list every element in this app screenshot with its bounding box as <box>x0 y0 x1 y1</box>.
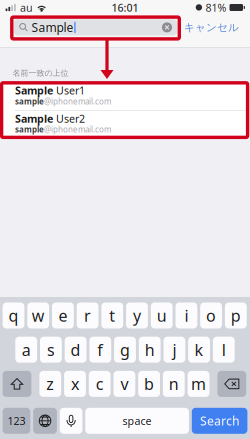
staticText: 名前一致の上位 <box>12 68 68 78</box>
button[interactable]: j <box>163 337 185 363</box>
staticText: z <box>46 373 54 394</box>
staticText: y <box>133 305 141 326</box>
staticText: User2 <box>53 111 85 126</box>
button[interactable]: q <box>3 302 24 328</box>
button[interactable]: e <box>52 302 74 328</box>
staticText: キャンセル <box>184 21 239 34</box>
button[interactable]: Search <box>192 408 247 434</box>
button[interactable]: 123 <box>3 408 30 434</box>
staticText: p <box>231 305 241 326</box>
staticText: User1 <box>53 83 85 97</box>
staticText: Search <box>200 413 239 429</box>
button[interactable]: f <box>89 337 111 363</box>
button[interactable]: s <box>40 337 62 363</box>
staticText: s <box>47 339 55 360</box>
staticText: sample <box>15 96 44 107</box>
button[interactable]: r <box>77 302 98 328</box>
button[interactable]: Sample <box>14 19 177 35</box>
staticText: k <box>195 339 204 360</box>
button[interactable]: c <box>89 371 111 397</box>
staticText: Sample <box>31 19 73 35</box>
button[interactable]: space <box>85 408 189 434</box>
button[interactable]: Sample <box>0 83 250 110</box>
staticText: t <box>109 305 115 326</box>
staticText: u <box>157 305 167 326</box>
staticText: a <box>22 339 31 360</box>
button[interactable]: o <box>200 302 222 328</box>
button[interactable]: p <box>225 302 247 328</box>
staticText: n <box>169 373 179 394</box>
button[interactable]: Sample <box>0 111 250 138</box>
button[interactable]: Shift <box>3 371 31 397</box>
staticText: Sample <box>15 83 53 97</box>
staticText: h <box>145 339 155 360</box>
button[interactable]: i <box>175 302 197 328</box>
button[interactable]: g <box>114 337 136 363</box>
staticText: w <box>32 305 45 326</box>
staticText: d <box>71 339 81 360</box>
staticText: m <box>191 373 206 394</box>
staticText: g <box>120 339 130 360</box>
button[interactable]: Next keyboard <box>33 408 57 434</box>
staticText: au <box>20 0 33 15</box>
staticText: l <box>222 339 226 360</box>
staticText: @iphonemail.com <box>44 96 111 107</box>
staticText: v <box>120 373 128 394</box>
staticText: x <box>71 373 79 394</box>
button[interactable]: l <box>213 337 235 363</box>
button[interactable]: k <box>188 337 210 363</box>
staticText: @iphonemail.com <box>44 124 111 135</box>
button[interactable]: h <box>139 337 161 363</box>
button[interactable]: Dictation <box>60 408 82 434</box>
staticText: c <box>96 373 104 394</box>
staticText: Sample <box>15 111 53 126</box>
button[interactable]: z <box>39 371 61 397</box>
staticText: i <box>184 305 188 326</box>
staticText: f <box>97 339 103 360</box>
staticText: b <box>144 373 154 394</box>
staticText: 16:01 <box>111 0 138 15</box>
button[interactable]: x <box>64 371 86 397</box>
staticText: space <box>123 414 152 428</box>
staticText: sample <box>15 124 44 135</box>
button[interactable]: v <box>113 371 135 397</box>
staticText: j <box>172 339 176 360</box>
staticText: q <box>8 305 18 326</box>
button[interactable]: w <box>27 302 49 328</box>
button[interactable]: n <box>163 371 185 397</box>
button[interactable]: Delete <box>217 371 246 397</box>
button[interactable]: m <box>188 371 209 397</box>
staticText: 123 <box>7 414 25 428</box>
staticText: r <box>84 305 91 326</box>
button[interactable]: d <box>65 337 86 363</box>
button[interactable]: キャンセル <box>184 21 239 34</box>
button[interactable]: y <box>126 302 148 328</box>
button[interactable]: a <box>15 337 37 363</box>
button[interactable]: t <box>101 302 123 328</box>
button[interactable]: b <box>138 371 160 397</box>
staticText: e <box>58 305 67 326</box>
staticText: 81% <box>205 0 226 15</box>
staticText: o <box>206 305 216 326</box>
button[interactable]: u <box>151 302 173 328</box>
